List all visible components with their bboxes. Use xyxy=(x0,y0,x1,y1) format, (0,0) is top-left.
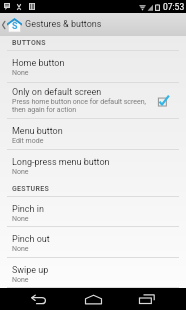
staticText: Pinch in xyxy=(12,204,44,215)
button[interactable]: Home button xyxy=(0,51,186,83)
button[interactable]: Navigate up xyxy=(0,13,186,36)
staticText: Home button xyxy=(12,58,65,69)
button[interactable]: Pinch out xyxy=(0,227,186,258)
staticText: None xyxy=(12,69,29,77)
button[interactable]: Home xyxy=(66,288,120,310)
staticText: Pinch out xyxy=(12,234,50,245)
button[interactable]: Pinch in xyxy=(0,197,186,227)
other: Navigate up xyxy=(2,21,5,29)
staticText: None xyxy=(12,245,29,253)
button[interactable]: Swipe up xyxy=(0,258,186,288)
staticText: Gestures & buttons xyxy=(25,19,102,30)
staticText: None xyxy=(12,276,29,284)
staticText: GESTURES xyxy=(12,185,50,193)
staticText: Only on default screen xyxy=(12,87,102,98)
button[interactable]: Menu button xyxy=(0,119,186,150)
button[interactable]: Recent apps xyxy=(120,288,174,310)
staticText: BUTTONS xyxy=(12,39,46,47)
staticText: then again for action xyxy=(12,106,77,114)
button[interactable]: Long-press menu button xyxy=(0,150,186,181)
staticText: Swipe up xyxy=(12,265,49,276)
button[interactable]: Only on default screen xyxy=(0,83,186,119)
staticText: Edit mode xyxy=(12,137,44,145)
button[interactable]: Back xyxy=(11,288,66,310)
staticText: Press home button once for default scree… xyxy=(12,98,146,106)
staticText: Menu button xyxy=(12,126,63,137)
staticText: None xyxy=(12,215,29,223)
staticText: Long-press menu button xyxy=(12,157,110,168)
staticText: S xyxy=(12,21,18,32)
staticText: None xyxy=(12,168,29,176)
staticText: 07:53 xyxy=(163,2,185,12)
